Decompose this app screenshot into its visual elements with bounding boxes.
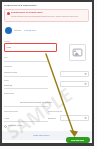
staticText: Class	[4, 79, 9, 82]
staticText: Category	[4, 65, 13, 68]
button[interactable]: Select option	[60, 81, 89, 87]
staticText: SKU	[4, 56, 8, 59]
button[interactable]: Save and close	[66, 137, 90, 143]
staticText: Save and close	[71, 139, 85, 142]
staticText: Description	[4, 92, 15, 95]
button[interactable]: Make adjustment	[33, 134, 50, 137]
staticText: Income account	[48, 110, 63, 113]
button[interactable]: Change type	[24, 29, 36, 32]
staticText: Yoga	[6, 46, 12, 49]
staticText: Some content can't be completed using th…	[11, 15, 79, 18]
button[interactable]: Inclusive of VAT	[4, 124, 19, 127]
staticText: Make adjustment	[33, 134, 50, 137]
staticText: Sales price/rate	[4, 110, 18, 113]
staticText: SAMPLE	[1, 81, 78, 145]
button[interactable]: Select option	[60, 115, 89, 121]
staticText: Program	[4, 84, 13, 87]
button[interactable]: Service type icon	[5, 27, 12, 34]
staticText: Product/Service information	[4, 4, 37, 7]
button[interactable]: Add image	[69, 44, 86, 61]
staticText: Something's not quite right	[11, 11, 43, 14]
staticText: Services	[48, 117, 56, 120]
button[interactable]: Select option	[60, 71, 89, 77]
staticText: Inclusive of VAT	[8, 124, 23, 127]
staticText: Personal training session for one hour	[20, 101, 53, 103]
staticText: 1.000	[4, 117, 10, 120]
staticText: Service	[14, 29, 22, 32]
staticText: Monthly yoga	[4, 71, 17, 74]
staticText: Name	[4, 40, 10, 43]
staticText: Change type	[24, 29, 36, 32]
